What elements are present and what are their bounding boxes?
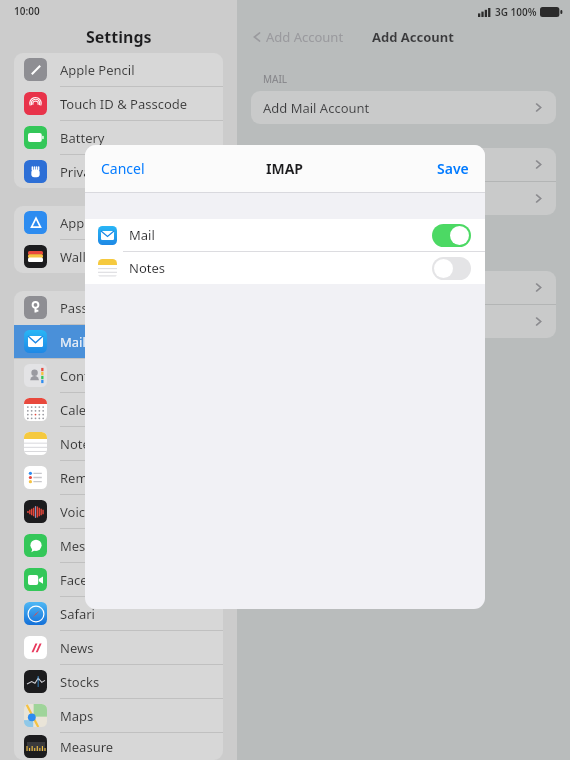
button[interactable]: Battery <box>14 121 223 155</box>
staticText: Settings <box>86 26 152 48</box>
staticText: Contacts <box>60 367 114 385</box>
button[interactable]: Reminders <box>14 461 223 495</box>
staticText: Measure <box>60 738 114 756</box>
staticText: Messages <box>60 537 121 555</box>
staticText: Save <box>437 159 469 178</box>
staticText: Battery <box>60 129 105 147</box>
button[interactable]: Save <box>431 153 475 184</box>
button[interactable]: News <box>14 631 223 665</box>
staticText: Add Account <box>266 28 344 46</box>
staticText: Notes <box>129 259 165 277</box>
staticText: News <box>60 639 94 657</box>
staticText: 3G 100% <box>495 5 537 19</box>
button[interactable]: Safari <box>14 597 223 631</box>
button[interactable] <box>251 182 556 215</box>
button[interactable]: Back to Add Account <box>251 28 344 46</box>
other: On <box>432 224 471 247</box>
button[interactable]: Privacy <box>14 155 223 188</box>
button[interactable]: Stocks <box>14 665 223 699</box>
staticText: Wallet <box>60 248 98 266</box>
staticText: MAIL <box>263 72 288 86</box>
staticText: Maps <box>60 707 94 725</box>
button[interactable]: App Store <box>14 206 223 240</box>
button[interactable]: Apple Pencil <box>14 53 223 87</box>
staticText: Touch ID & Passcode <box>60 95 188 113</box>
staticText: 10:00 <box>14 4 40 18</box>
button[interactable] <box>251 148 556 181</box>
button[interactable]: Passwords <box>14 291 223 325</box>
button[interactable]: Contacts <box>14 359 223 393</box>
button[interactable]: Mail <box>85 219 485 251</box>
staticText: Add Account <box>372 28 454 46</box>
button[interactable]: Add Mail Account <box>251 91 556 124</box>
staticText: Privacy <box>60 163 104 181</box>
staticText: Calendar <box>60 401 115 419</box>
staticText: Cancel <box>101 159 145 178</box>
staticText: Voice Memos <box>60 503 142 521</box>
button[interactable] <box>251 305 556 338</box>
staticText: IMAP <box>266 159 304 178</box>
button[interactable]: Voice Memos <box>14 495 223 529</box>
staticText: Add Mail Account <box>263 99 370 117</box>
button[interactable]: Notes <box>85 252 485 284</box>
button[interactable]: Touch ID & Passcode <box>14 87 223 121</box>
button[interactable] <box>251 271 556 304</box>
staticText: Reminders <box>60 469 126 487</box>
staticText: Passwords <box>60 299 126 317</box>
staticText: Stocks <box>60 673 100 691</box>
staticText: FaceTime <box>60 571 118 589</box>
button[interactable]: Measure <box>14 733 223 760</box>
staticText: Mail <box>129 226 155 244</box>
staticText: Mail <box>60 333 86 351</box>
button[interactable]: Notes <box>14 427 223 461</box>
button[interactable]: Messages <box>14 529 223 563</box>
button[interactable]: Cancel <box>95 153 151 184</box>
button[interactable]: Maps <box>14 699 223 733</box>
staticText: Safari <box>60 605 95 623</box>
button[interactable]: FaceTime <box>14 563 223 597</box>
button[interactable]: Wallet <box>14 240 223 273</box>
staticText: App Store <box>60 214 120 232</box>
button[interactable]: Calendar <box>14 393 223 427</box>
staticText: Notes <box>60 435 96 453</box>
other: Off <box>432 257 471 280</box>
staticText: Apple Pencil <box>60 61 135 79</box>
button[interactable]: Mail <box>14 325 223 359</box>
